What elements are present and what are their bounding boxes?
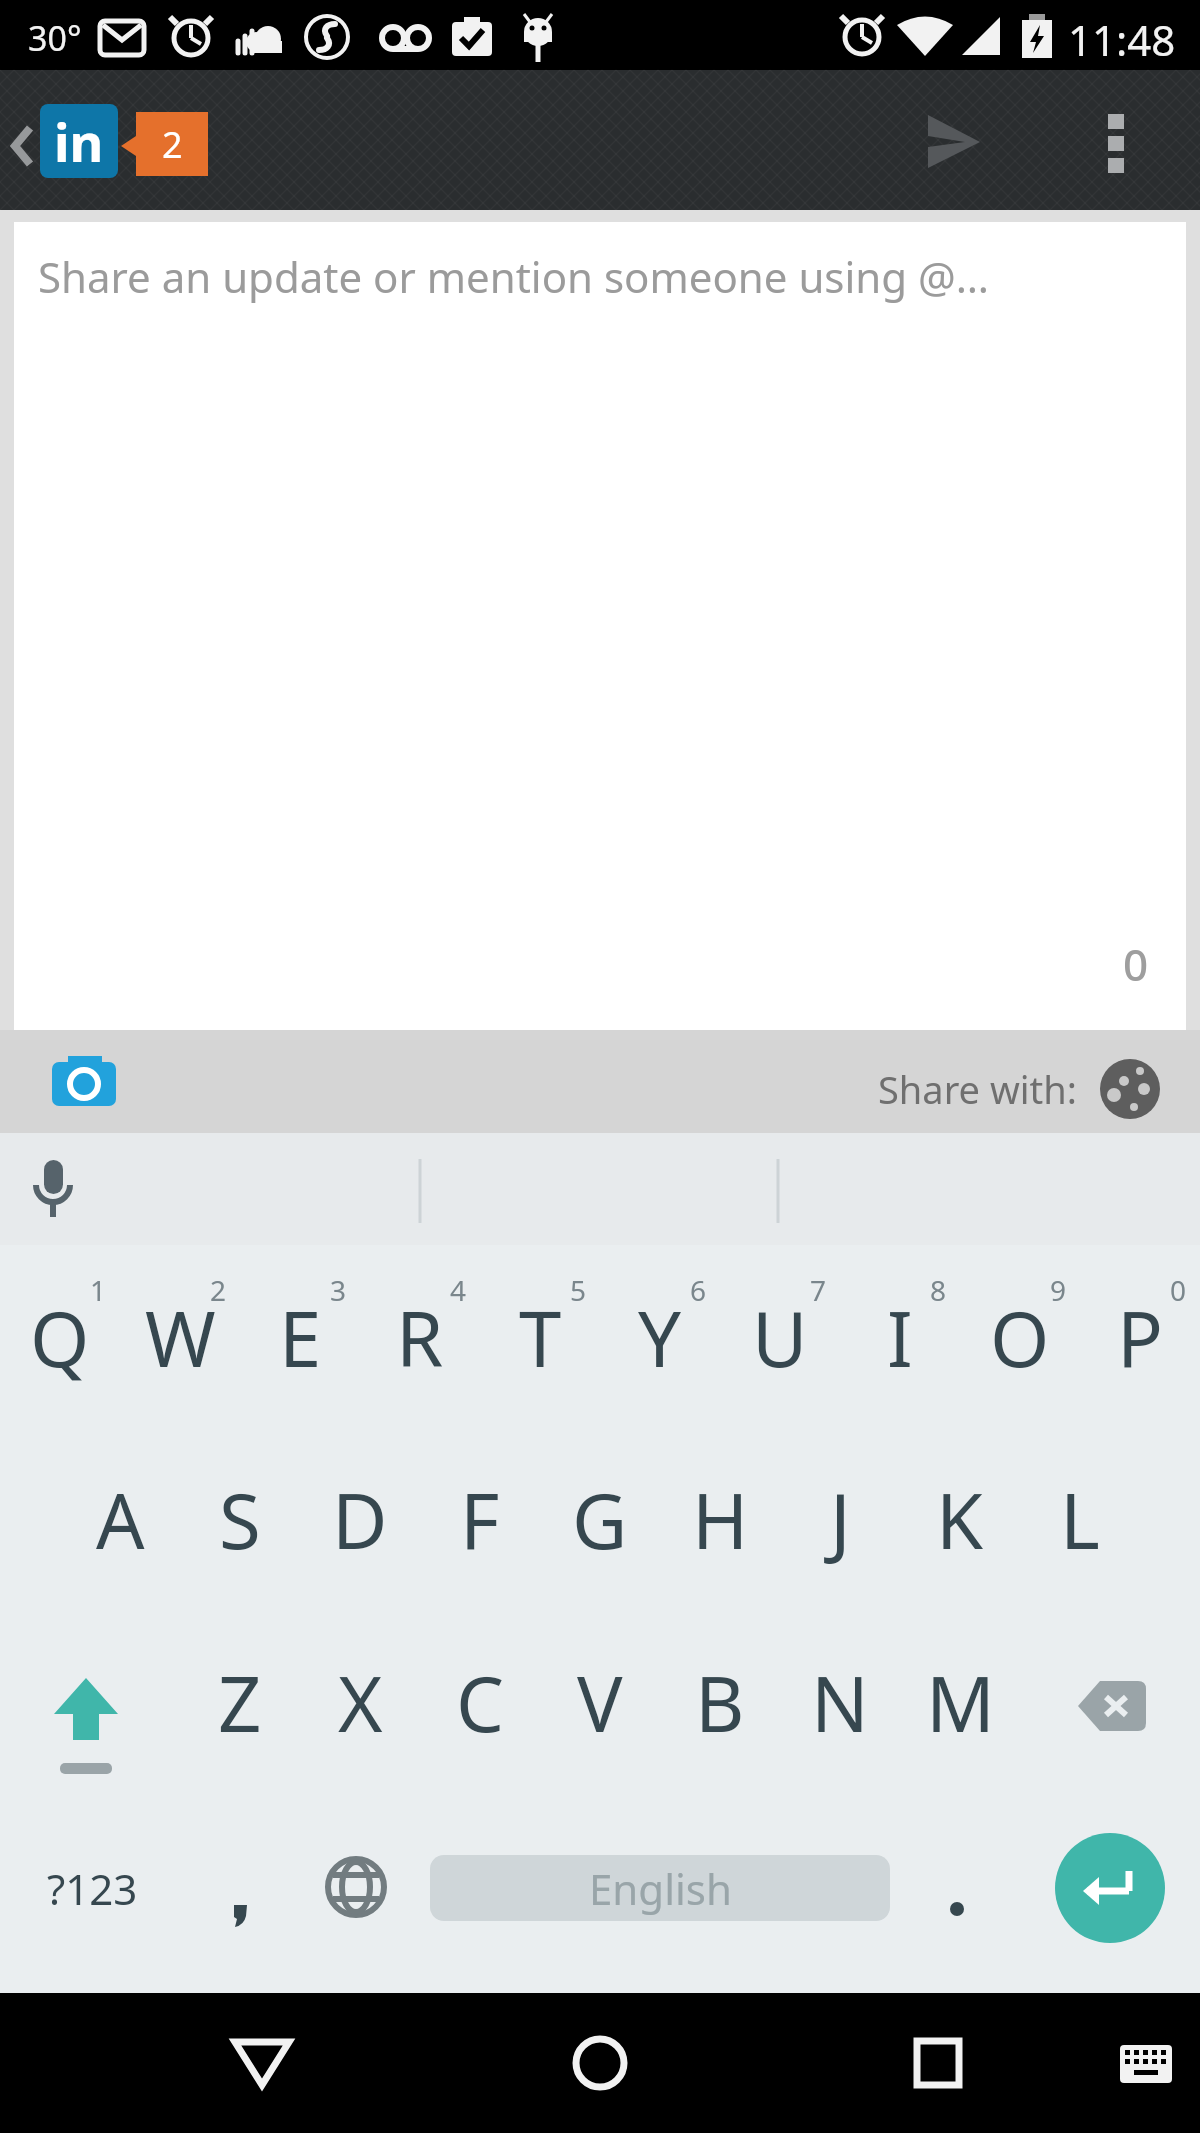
staticText: D <box>332 1468 388 1572</box>
button[interactable]: W <box>120 1258 240 1418</box>
button[interactable]: Y <box>600 1258 720 1418</box>
button[interactable]: Q <box>0 1258 120 1418</box>
staticText: 6 <box>690 1271 707 1309</box>
staticText: Y <box>638 1286 682 1390</box>
staticText: R <box>396 1286 444 1390</box>
button[interactable]: English <box>430 1855 890 1921</box>
staticText: G <box>572 1468 628 1572</box>
staticText: 11:48 <box>1068 11 1176 68</box>
button[interactable] <box>1050 1670 1180 1800</box>
button[interactable] <box>870 1030 1170 1133</box>
staticText: B <box>695 1651 745 1755</box>
button[interactable]: L <box>1020 1440 1140 1600</box>
button[interactable]: Z <box>180 1623 300 1783</box>
button[interactable]: P <box>1080 1258 1200 1418</box>
button[interactable]: I <box>840 1258 960 1418</box>
button[interactable]: J <box>780 1440 900 1600</box>
staticText: M <box>926 1651 995 1755</box>
button[interactable]: C <box>420 1623 540 1783</box>
button[interactable]: G <box>540 1440 660 1600</box>
button[interactable]: U <box>720 1258 840 1418</box>
button[interactable] <box>212 2013 312 2113</box>
staticText: 3 <box>330 1271 347 1309</box>
staticText: in <box>54 106 104 177</box>
staticText: F <box>460 1468 500 1572</box>
button[interactable]: R <box>360 1258 480 1418</box>
button[interactable]: H <box>660 1440 780 1600</box>
staticText: 9 <box>1050 1271 1067 1309</box>
button[interactable] <box>888 2013 988 2113</box>
staticText: 0 <box>1123 934 1149 994</box>
button[interactable]: K <box>900 1440 1020 1600</box>
button[interactable]: 2 <box>118 112 210 176</box>
button[interactable] <box>550 2013 650 2113</box>
staticText: Share with: <box>878 1063 1077 1115</box>
staticText: K <box>936 1468 984 1572</box>
staticText: E <box>279 1286 322 1390</box>
button[interactable]: M <box>900 1623 1020 1783</box>
button[interactable] <box>905 100 1005 180</box>
staticText: English <box>589 1860 732 1917</box>
button[interactable]: S <box>180 1440 300 1600</box>
staticText: 7 <box>810 1271 827 1309</box>
staticText: 0 <box>1170 1271 1187 1309</box>
button[interactable]: Share an update or mention someone using… <box>14 222 1186 1030</box>
staticText: I <box>887 1286 913 1390</box>
staticText: 8 <box>930 1271 947 1309</box>
staticText: ?123 <box>47 1860 138 1917</box>
button[interactable] <box>1096 2013 1196 2113</box>
button[interactable]: O <box>960 1258 1080 1418</box>
staticText: Share an update or mention someone using… <box>38 248 990 305</box>
button[interactable]: X <box>300 1623 420 1783</box>
button[interactable] <box>927 1878 987 1938</box>
button[interactable] <box>1085 100 1155 180</box>
button[interactable] <box>1055 1833 1165 1943</box>
staticText: Z <box>218 1651 262 1755</box>
button[interactable]: A <box>60 1440 180 1600</box>
staticText: W <box>145 1286 216 1390</box>
staticText: H <box>692 1468 749 1572</box>
button[interactable] <box>10 1143 100 1235</box>
button[interactable]: ?123 <box>0 1828 292 1948</box>
staticText: 2 <box>162 120 183 169</box>
button[interactable] <box>306 1838 406 1938</box>
staticText: 1 <box>90 1271 107 1309</box>
staticText: C <box>456 1651 505 1755</box>
button[interactable]: in <box>40 104 118 178</box>
button[interactable] <box>210 1875 270 1935</box>
staticText: X <box>338 1651 383 1755</box>
button[interactable]: B <box>660 1623 780 1783</box>
button[interactable]: F <box>420 1440 540 1600</box>
button[interactable] <box>0 110 40 170</box>
staticText: P <box>1117 1286 1163 1390</box>
button[interactable] <box>20 1654 150 1804</box>
button[interactable]: E <box>240 1258 360 1418</box>
staticText: S <box>219 1468 261 1572</box>
staticText: V <box>577 1651 623 1755</box>
staticText: N <box>811 1651 869 1755</box>
staticText: J <box>830 1468 851 1572</box>
staticText: 5 <box>570 1271 587 1309</box>
staticText: L <box>1060 1468 1100 1572</box>
button[interactable]: N <box>780 1623 900 1783</box>
staticText: U <box>752 1286 808 1390</box>
staticText: A <box>96 1468 145 1572</box>
staticText: 4 <box>450 1271 467 1309</box>
staticText: Q <box>30 1286 90 1390</box>
button[interactable]: D <box>300 1440 420 1600</box>
staticText: T <box>519 1286 562 1390</box>
staticText: 2 <box>210 1271 227 1309</box>
staticText: O <box>990 1286 1050 1390</box>
button[interactable] <box>36 1048 130 1118</box>
staticText: 30° <box>28 15 82 61</box>
button[interactable]: V <box>540 1623 660 1783</box>
button[interactable]: T <box>480 1258 600 1418</box>
